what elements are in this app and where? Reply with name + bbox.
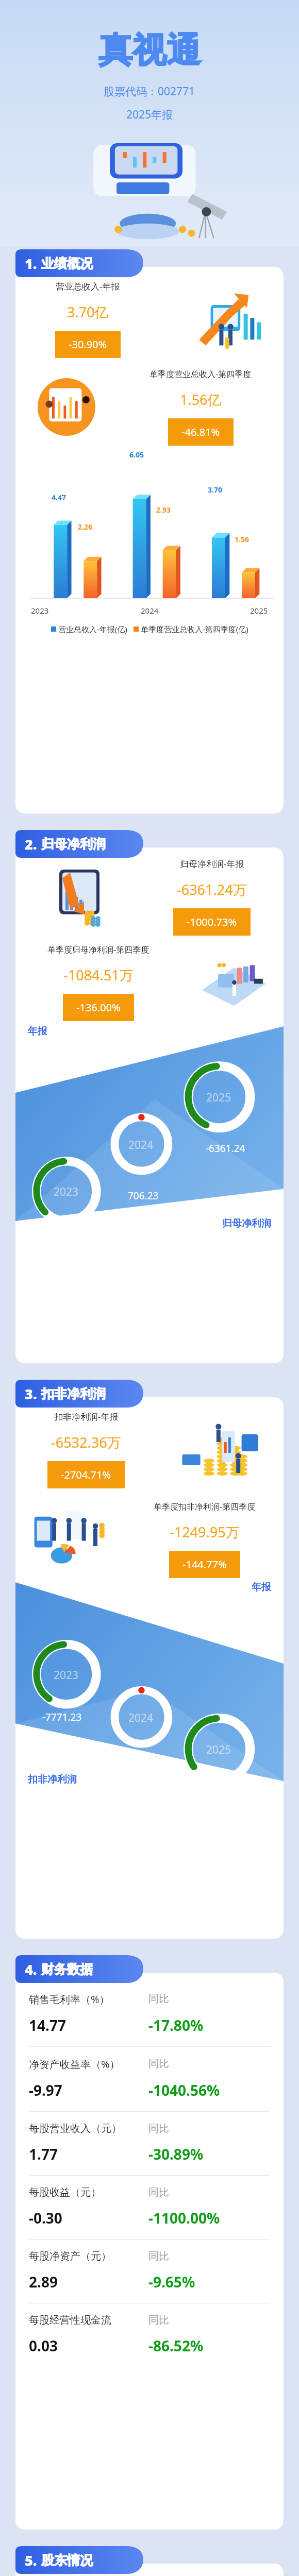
staticText: 股东情况 <box>41 2552 93 2568</box>
staticText: -1100.00% <box>148 2208 220 2228</box>
staticText: 单季度扣非净利润-第四季度 <box>154 1501 256 1512</box>
staticText: 2024 <box>141 605 159 616</box>
staticText: 1.56 <box>235 534 249 544</box>
button[interactable]: -144.77% <box>169 1551 240 1578</box>
staticText: 同比 <box>148 2057 169 2070</box>
button[interactable]: -30.90% <box>55 331 121 358</box>
staticText: 706.23 <box>128 1189 159 1202</box>
staticText: 单季度营业总收入-第四季度 <box>149 368 252 380</box>
staticText: 6.05 <box>129 450 144 460</box>
staticText: -30.90% <box>69 337 107 351</box>
staticText: 3.70 <box>208 485 222 495</box>
staticText: 同比 <box>148 2314 169 2327</box>
button[interactable]: 每股经营性现金流 <box>15 2303 284 2367</box>
staticText: -6361.24 <box>206 1142 245 1155</box>
staticText: 3.70亿 <box>67 302 109 321</box>
staticText: 2024 <box>128 1138 154 1153</box>
staticText: 2023 <box>31 605 49 616</box>
staticText: -0.30 <box>29 2208 148 2228</box>
staticText: 2025年报 <box>126 107 173 122</box>
staticText: -9.65% <box>148 2272 195 2292</box>
button[interactable]: -1000.73% <box>173 908 251 936</box>
staticText: 1.56亿 <box>180 390 222 409</box>
staticText: 每股净资产（元） <box>29 2250 148 2263</box>
staticText: -46.81% <box>181 425 220 439</box>
button[interactable]: 5. <box>15 2546 284 2574</box>
staticText: 2.93 <box>156 505 171 515</box>
staticText: 2. <box>25 835 37 854</box>
staticText: -6532.36万 <box>51 1433 121 1452</box>
staticText: 每股收益（元） <box>29 2186 148 2199</box>
staticText: 同比 <box>148 2186 169 2199</box>
staticText: 2023 <box>54 1668 79 1683</box>
staticText: 销售毛利率（%） <box>29 1992 148 2006</box>
button[interactable]: 3. <box>15 1380 284 1408</box>
staticText: -30.89% <box>148 2144 204 2164</box>
staticText: -1084.51万 <box>63 965 134 985</box>
staticText: -9.97 <box>29 2080 148 2100</box>
staticText: 2023 <box>54 1184 79 1199</box>
staticText: -1000.73% <box>187 915 237 929</box>
staticText: 同比 <box>148 2122 169 2135</box>
staticText: 2025 <box>206 1742 231 1757</box>
staticText: 1. <box>25 254 37 273</box>
staticText: -1249.95万 <box>170 1522 240 1541</box>
button[interactable]: 销售毛利率（%） <box>15 1982 284 2046</box>
staticText: 归母净利润 <box>222 1217 271 1230</box>
staticText: 14.77 <box>29 2015 148 2035</box>
staticText: -6361.24万 <box>177 880 247 899</box>
staticText: 2025 <box>206 1090 231 1105</box>
button[interactable]: 每股收益（元） <box>15 2175 284 2239</box>
staticText: 2.89 <box>29 2272 148 2292</box>
staticText: 业绩概况 <box>41 256 93 272</box>
staticText: 归母净利润 <box>41 836 106 852</box>
button[interactable]: -46.81% <box>168 418 234 446</box>
staticText: 单季度营业总收入-第四季度(亿) <box>141 624 248 634</box>
staticText: 4.47 <box>52 493 66 502</box>
staticText: 每股经营性现金流 <box>29 2314 148 2327</box>
staticText: 同比 <box>148 1992 169 2005</box>
button[interactable]: 净资产收益率（%） <box>15 2046 284 2111</box>
staticText: 5. <box>25 2551 37 2570</box>
staticText: 4. <box>25 1960 37 1979</box>
staticText: 单季度归母净利润-第四季度 <box>47 944 149 955</box>
staticText: 扣非净利润 <box>28 1773 77 1786</box>
button[interactable]: -136.00% <box>63 994 134 1021</box>
staticText: 2024 <box>128 1710 154 1725</box>
staticText: 同比 <box>148 2250 169 2263</box>
staticText: 股票代码：002771 <box>104 84 195 99</box>
staticText: -1040.56% <box>148 2080 220 2100</box>
staticText: 财务数据 <box>41 1961 93 1977</box>
staticText: 2.26 <box>78 522 92 532</box>
staticText: 营业总收入-年报(亿) <box>58 624 127 634</box>
button[interactable]: 每股营业收入（元） <box>15 2111 284 2175</box>
staticText: 归母净利润-年报 <box>180 858 244 870</box>
staticText: 营业总收入-年报 <box>56 280 120 292</box>
button[interactable]: -2704.71% <box>47 1461 125 1488</box>
staticText: -86.52% <box>148 2336 204 2355</box>
staticText: 1.77 <box>29 2144 148 2164</box>
staticText: 扣非净利润-年报 <box>54 1411 119 1422</box>
staticText: 0.03 <box>29 2336 148 2355</box>
staticText: -7771.23 <box>42 1710 82 1724</box>
button[interactable]: 4. <box>15 1955 284 1983</box>
staticText: -144.77% <box>182 1557 227 1571</box>
staticText: 2025 <box>250 605 268 616</box>
staticText: 净资产收益率（%） <box>29 2057 148 2071</box>
button[interactable]: 每股净资产（元） <box>15 2239 284 2303</box>
staticText: 3. <box>25 1384 37 1403</box>
staticText: -2704.71% <box>61 1468 111 1482</box>
button[interactable]: 1. <box>15 249 284 277</box>
staticText: 真视通 <box>98 29 201 72</box>
button[interactable]: 2. <box>15 830 284 858</box>
staticText: 年报 <box>252 1581 271 1594</box>
staticText: -136.00% <box>76 1001 121 1014</box>
staticText: -17.80% <box>148 2015 204 2035</box>
button[interactable]: 1.陈瑞良 <box>15 2570 284 2576</box>
staticText: 扣非净利润 <box>41 1386 106 1402</box>
